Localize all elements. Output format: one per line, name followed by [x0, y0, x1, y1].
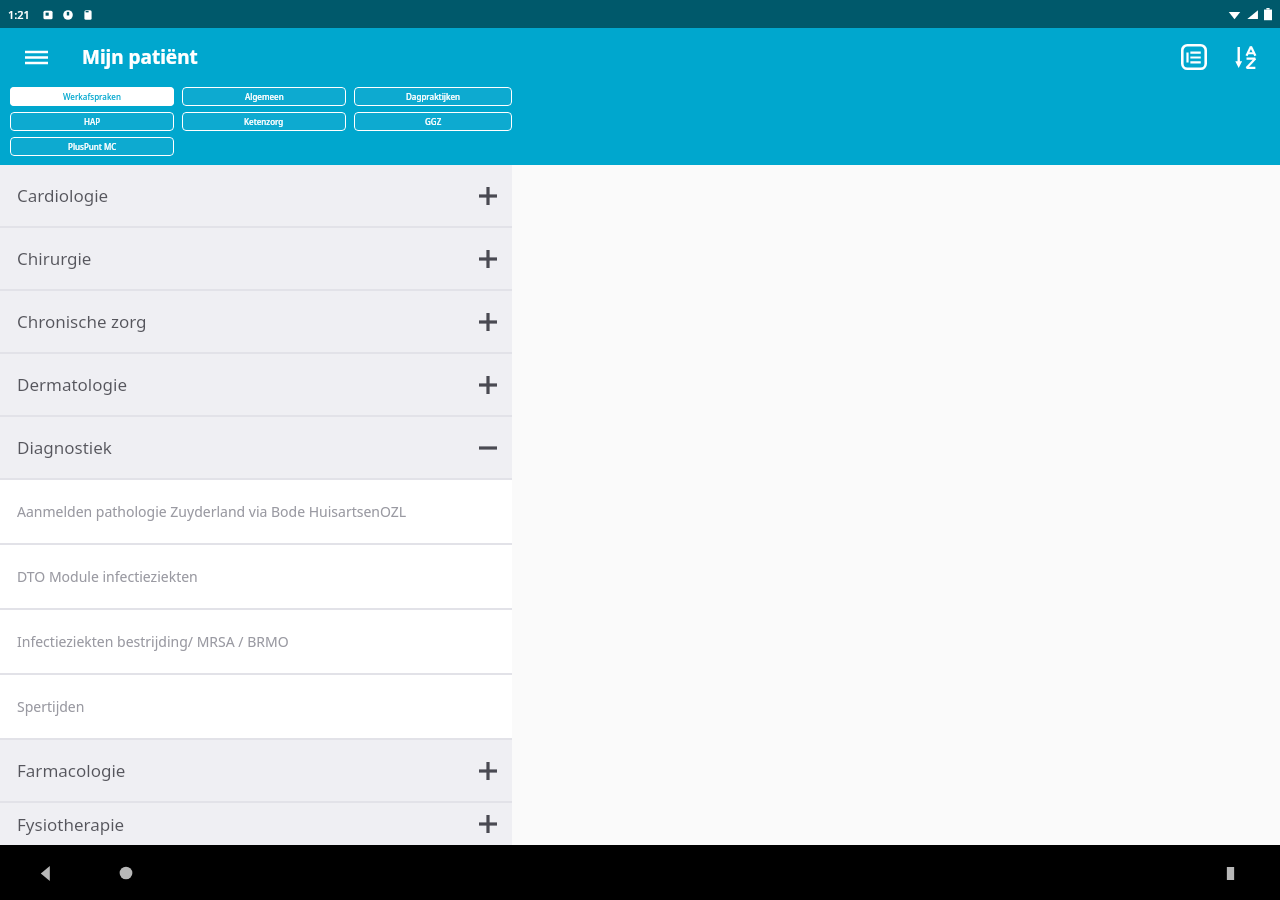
button[interactable]: Spertijden: [0, 675, 512, 738]
staticText: Spertijden: [17, 697, 85, 716]
button[interactable]: Fysiotherapie: [0, 803, 512, 845]
staticText: Cardiologie: [17, 184, 109, 207]
staticText: Aanmelden pathologie Zuyderland via Bode…: [17, 502, 407, 521]
button[interactable]: Ketenzorg: [182, 112, 346, 131]
button[interactable]: Algemeen: [182, 87, 346, 106]
staticText: Infectieziekten bestrijding/ MRSA / BRMO: [17, 632, 289, 651]
staticText: Farmacologie: [17, 759, 126, 782]
button[interactable]: Chirurgie: [0, 228, 512, 289]
staticText: Ketenzorg: [244, 116, 284, 127]
button[interactable]: Sort alphabetically: [1222, 33, 1270, 81]
staticText: Werkafspraken: [63, 91, 121, 102]
button[interactable]: Open navigation menu: [14, 35, 58, 79]
button[interactable]: Chronische zorg: [0, 291, 512, 352]
button[interactable]: Infectieziekten bestrijding/ MRSA / BRMO: [0, 610, 512, 673]
staticText: PlusPunt MC: [68, 141, 117, 152]
button[interactable]: HAP: [10, 112, 174, 131]
staticText: Chirurgie: [17, 247, 92, 270]
button[interactable]: Dagpraktijken: [354, 87, 512, 106]
button[interactable]: Farmacologie: [0, 740, 512, 801]
button[interactable]: DTO Module infectieziekten: [0, 545, 512, 608]
button[interactable]: Werkafspraken: [10, 87, 174, 106]
button[interactable]: PlusPunt MC: [10, 137, 174, 156]
button[interactable]: Aanmelden pathologie Zuyderland via Bode…: [0, 480, 512, 543]
button[interactable]: GGZ: [354, 112, 512, 131]
staticText: DTO Module infectieziekten: [17, 567, 198, 586]
button[interactable]: Back: [24, 851, 68, 895]
button[interactable]: View as list: [1170, 33, 1218, 81]
button[interactable]: Home: [104, 851, 148, 895]
staticText: Dagpraktijken: [406, 91, 461, 102]
staticText: Algemeen: [245, 91, 284, 102]
staticText: GGZ: [425, 116, 442, 127]
staticText: Fysiotherapie: [17, 813, 125, 836]
button[interactable]: Diagnostiek: [0, 417, 512, 478]
staticText: Dermatologie: [17, 373, 127, 396]
staticText: 1:21: [8, 7, 30, 22]
staticText: Diagnostiek: [17, 436, 112, 459]
button[interactable]: Recent apps: [1208, 851, 1252, 895]
button[interactable]: Cardiologie: [0, 165, 512, 226]
staticText: Mijn patiënt: [82, 44, 198, 70]
staticText: Chronische zorg: [17, 310, 147, 333]
button[interactable]: Dermatologie: [0, 354, 512, 415]
staticText: HAP: [84, 116, 101, 127]
